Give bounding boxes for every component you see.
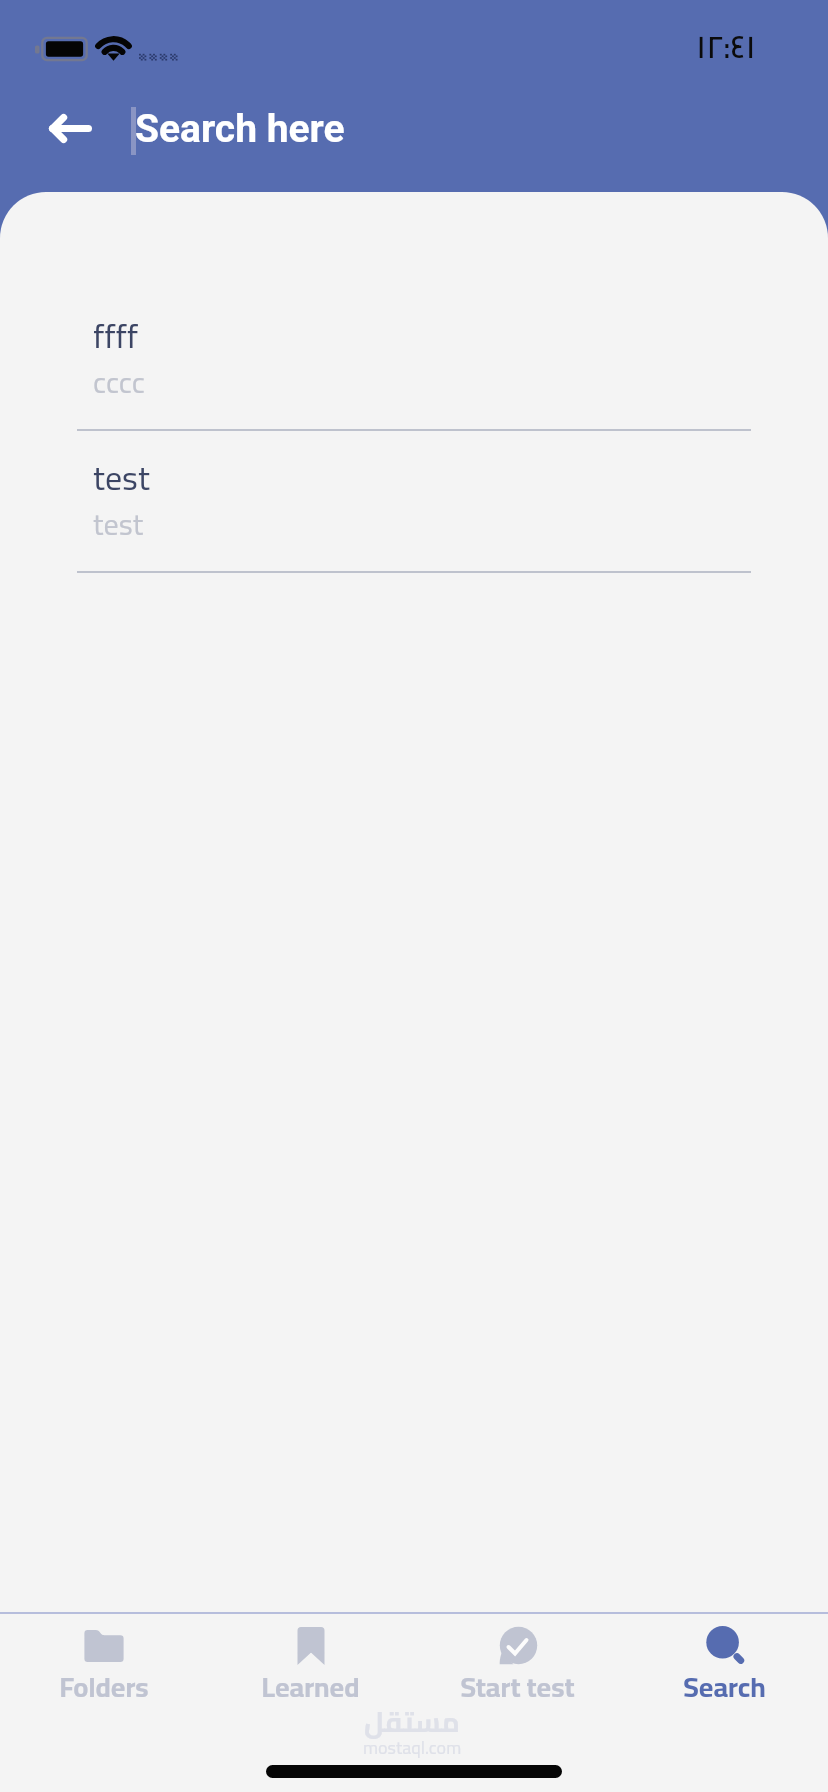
staticText: test	[93, 496, 144, 552]
staticText: ffff	[93, 304, 139, 368]
button[interactable]: Learned	[207, 1614, 414, 1666]
staticText: cccc	[93, 354, 145, 410]
staticText: مستقل	[364, 1696, 460, 1748]
staticText: Start test	[460, 1661, 575, 1713]
button[interactable]: Start test	[414, 1614, 621, 1666]
button[interactable]: Back	[27, 85, 113, 171]
button[interactable]: Folders	[0, 1614, 207, 1666]
staticText: Search	[683, 1661, 766, 1713]
button[interactable]: Search	[621, 1614, 828, 1666]
button[interactable]: ffff	[0, 289, 828, 431]
staticText: ١٢:٤١	[696, 16, 756, 76]
staticText: Learned	[261, 1661, 360, 1713]
staticText: Search here	[135, 106, 345, 152]
staticText: Folders	[59, 1661, 149, 1713]
staticText: test	[93, 446, 150, 510]
button[interactable]: test	[0, 431, 828, 573]
staticText: mostaql.com	[363, 1731, 462, 1765]
